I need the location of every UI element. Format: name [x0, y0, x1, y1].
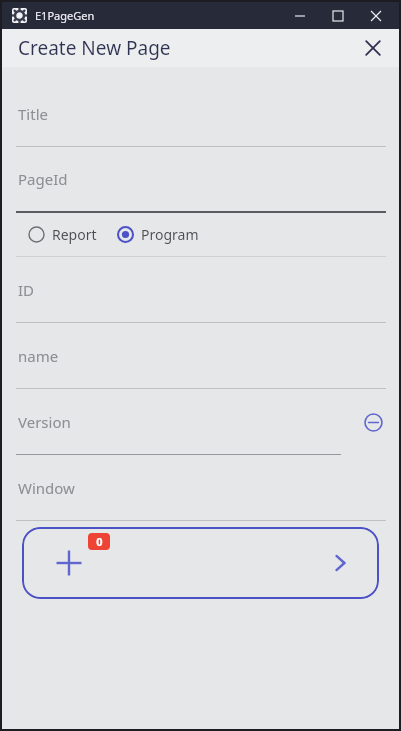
staticText: ID — [18, 280, 35, 300]
staticText: Program — [141, 225, 199, 244]
button[interactable]: Version — [18, 389, 351, 454]
staticText: E1PageGen — [35, 8, 95, 23]
staticText: Version — [18, 412, 71, 432]
staticText: PageId — [18, 169, 68, 189]
button[interactable]: Window — [2, 455, 399, 521]
button[interactable]: name — [2, 323, 399, 389]
staticText: Report — [52, 225, 97, 244]
button[interactable]: Title — [2, 81, 399, 147]
button[interactable]: Close dialog — [355, 30, 391, 66]
button[interactable]: Add item — [22, 527, 379, 599]
button[interactable]: Program — [117, 225, 199, 244]
button[interactable]: Close — [357, 2, 395, 29]
staticText: Title — [18, 104, 48, 124]
button[interactable]: Report — [28, 225, 97, 244]
staticText: 0 — [96, 534, 103, 549]
button[interactable]: Maximize — [319, 2, 357, 29]
staticText: name — [18, 346, 59, 366]
staticText: Window — [18, 478, 75, 498]
button[interactable]: Remove version — [351, 400, 395, 444]
button[interactable]: Minimize — [281, 2, 319, 29]
staticText: Create New Page — [18, 35, 171, 61]
button[interactable]: PageId — [2, 147, 399, 213]
button[interactable]: ID — [2, 257, 399, 323]
